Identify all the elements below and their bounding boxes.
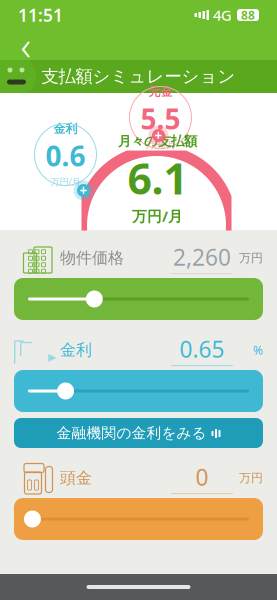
staticText: 11:51 [18, 3, 63, 26]
staticText: ▶ [48, 351, 56, 363]
staticText: + [154, 127, 162, 144]
staticText: 頭金 [60, 468, 92, 488]
staticText: 2,260 [173, 242, 231, 272]
staticText: 月々の支払額 [118, 133, 197, 150]
staticText: 0.6 [45, 137, 85, 174]
staticText: ‹ [20, 18, 31, 71]
staticText: % [253, 342, 263, 358]
staticText: 支払額シミュレーション [41, 66, 235, 87]
staticText: 万円/月 [145, 138, 175, 151]
staticText: 金融機関の金利をみる [56, 424, 206, 442]
staticText: 88 [241, 7, 255, 23]
staticText: 万円 [239, 471, 263, 485]
staticText: 万円/月 [132, 206, 183, 226]
staticText: 物件価格 [60, 248, 124, 268]
button[interactable]: Back [6, 30, 46, 60]
button[interactable]: 金融機関の金利をみる [14, 418, 263, 448]
staticText: 0 [195, 462, 208, 492]
staticText: 5.5 [140, 100, 180, 137]
staticText: 4G [213, 5, 232, 25]
staticText: + [79, 182, 87, 199]
staticText: 金利 [53, 121, 77, 136]
staticText: 万円 [239, 251, 263, 265]
staticText: 元金 [148, 84, 172, 99]
staticText: 金利 [60, 340, 92, 360]
staticText: 6.1 [127, 150, 187, 206]
staticText: 0.65 [179, 334, 224, 364]
staticText: 万円/月 [50, 175, 80, 188]
